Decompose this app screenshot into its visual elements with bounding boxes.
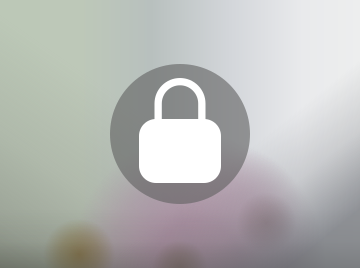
button[interactable]: Locked [110, 64, 250, 204]
